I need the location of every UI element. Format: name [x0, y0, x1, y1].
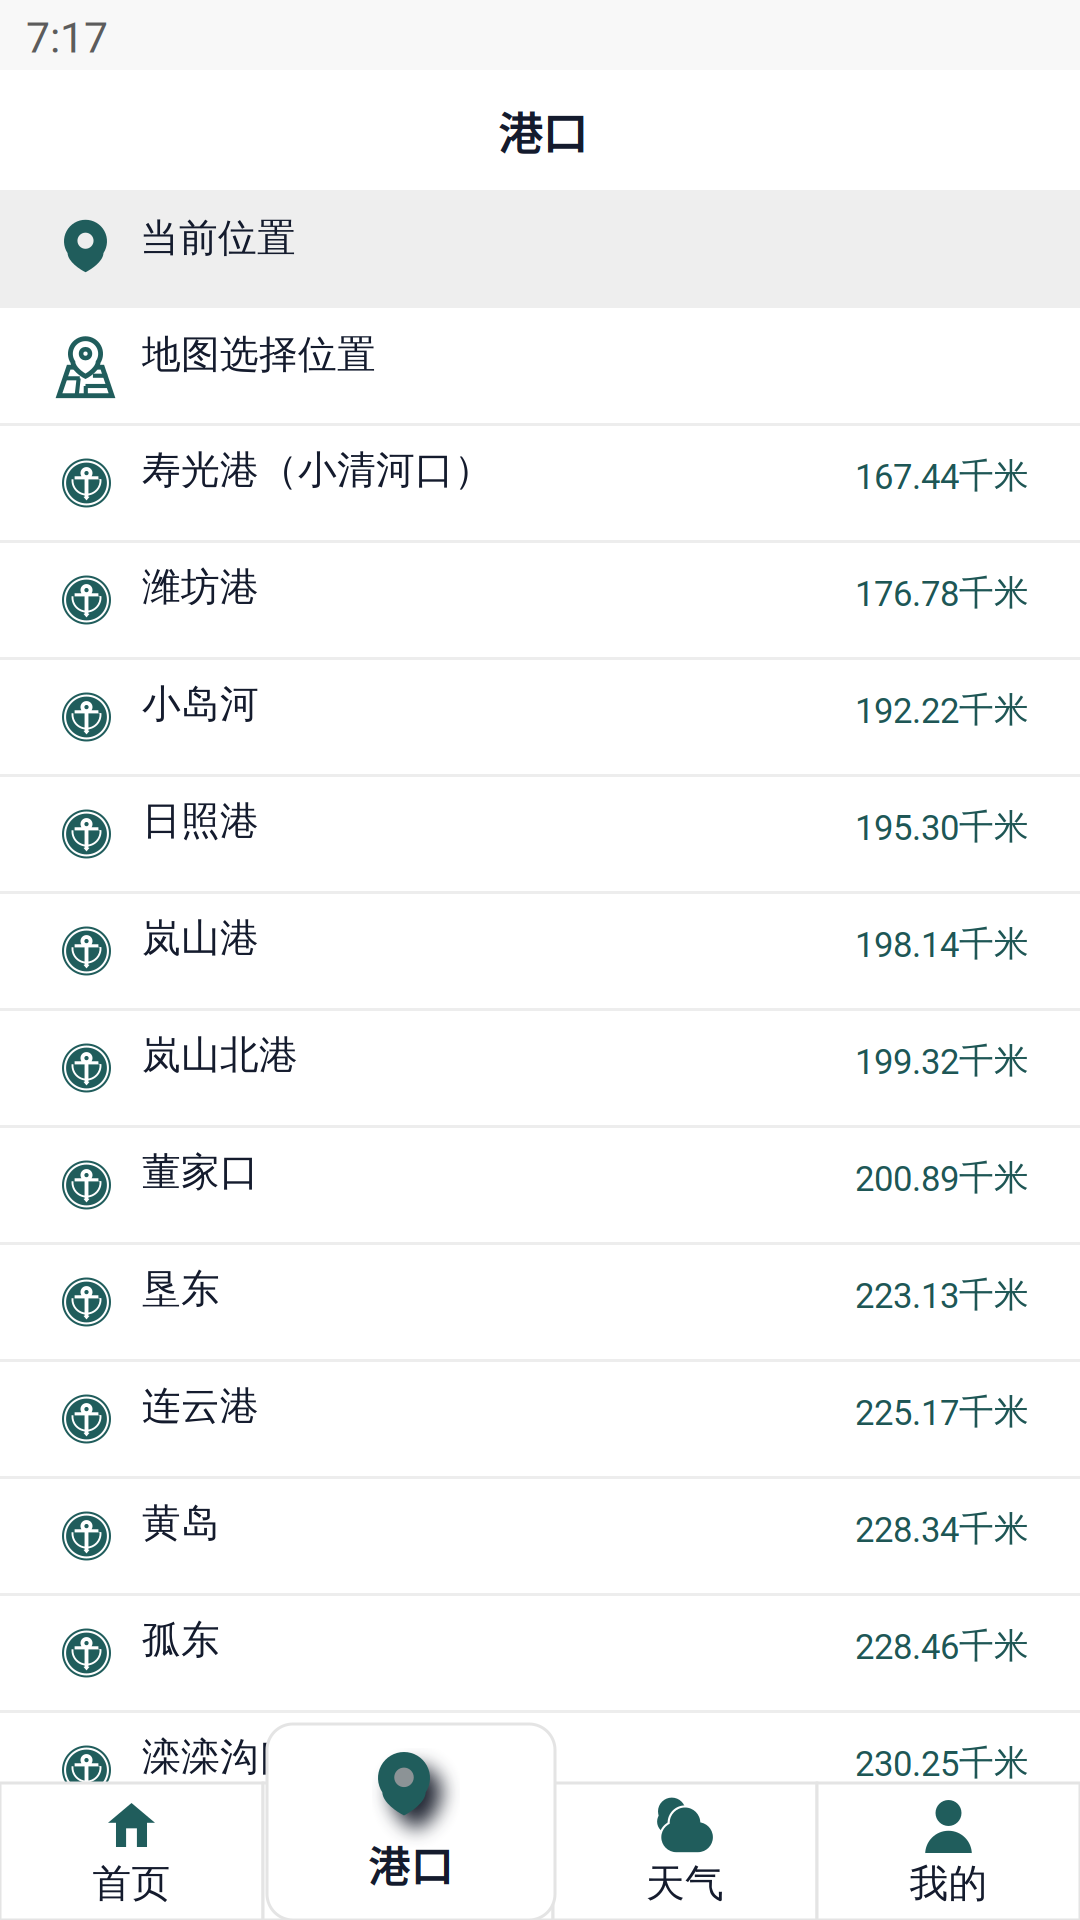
staticText: 小岛河: [142, 680, 259, 728]
staticText: 黄岛: [142, 1499, 220, 1547]
staticText: 7:17: [26, 13, 108, 63]
button[interactable]: 董家口: [0, 1128, 1080, 1245]
staticText: 176.78千米: [855, 571, 1029, 615]
staticText: 228.46千米: [855, 1624, 1029, 1668]
staticText: 当前位置: [140, 214, 296, 262]
staticText: 岚山北港: [142, 1031, 298, 1079]
staticText: 寿光港（小清河口）: [142, 446, 493, 494]
staticText: 岚山港: [142, 914, 259, 962]
staticText: 潍坊港: [142, 563, 259, 611]
staticText: 198.14千米: [855, 922, 1029, 966]
staticText: 192.22千米: [855, 688, 1029, 732]
button[interactable]: 港口: [267, 1724, 555, 1920]
button[interactable]: 当前位置: [0, 190, 1080, 308]
button[interactable]: 首页: [0, 1783, 263, 1920]
staticText: 167.44千米: [855, 454, 1029, 498]
staticText: 董家口: [142, 1148, 259, 1196]
button[interactable]: 我的: [817, 1783, 1080, 1920]
staticText: 195.30千米: [855, 805, 1029, 849]
staticText: 天气: [646, 1859, 724, 1908]
button[interactable]: 寿光港（小清河口）: [0, 426, 1080, 543]
button[interactable]: 滦滦沟口: [0, 1713, 1080, 1830]
staticText: 孤东: [142, 1616, 220, 1664]
button[interactable]: 垦东: [0, 1245, 1080, 1362]
button[interactable]: 岚山北港: [0, 1011, 1080, 1128]
staticText: 我的: [909, 1859, 987, 1908]
staticText: 港口: [368, 1832, 454, 1894]
button[interactable]: 地图选择位置: [0, 308, 1080, 426]
staticText: 连云港: [142, 1382, 259, 1430]
button[interactable]: 潍坊港: [0, 543, 1080, 660]
staticText: 230.25千米: [855, 1741, 1029, 1785]
button[interactable]: 小岛河: [0, 660, 1080, 777]
button[interactable]: 岚山港: [0, 894, 1080, 1011]
button[interactable]: 日照港: [0, 777, 1080, 894]
staticText: 200.89千米: [855, 1156, 1029, 1200]
staticText: 日照港: [142, 797, 259, 845]
staticText: 港口: [498, 97, 588, 163]
staticText: 225.17千米: [855, 1390, 1029, 1434]
staticText: 228.34千米: [855, 1507, 1029, 1551]
staticText: 垦东: [142, 1265, 220, 1313]
staticText: 首页: [92, 1859, 170, 1908]
staticText: 地图选择位置: [142, 330, 376, 379]
staticText: 199.32千米: [855, 1039, 1029, 1083]
button[interactable]: 连云港: [0, 1362, 1080, 1479]
button[interactable]: 黄岛: [0, 1479, 1080, 1596]
staticText: 港口: [369, 1859, 447, 1908]
button[interactable]: 孤东: [0, 1596, 1080, 1713]
staticText: 滦滦沟口: [142, 1733, 298, 1781]
staticText: 223.13千米: [855, 1273, 1029, 1317]
button[interactable]: 港口: [263, 1783, 553, 1920]
button[interactable]: 天气: [553, 1783, 817, 1920]
